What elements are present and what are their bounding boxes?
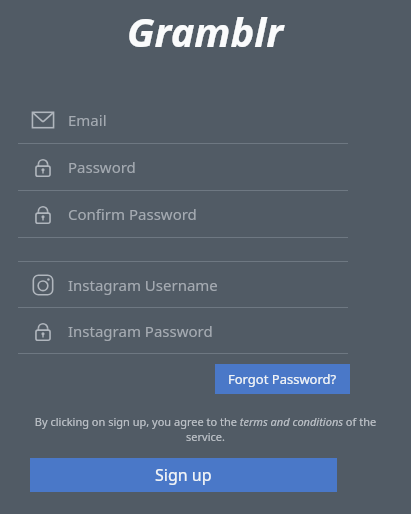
button[interactable]: Confirm Password xyxy=(18,191,348,237)
button[interactable]: Instagram Username xyxy=(18,262,348,307)
button[interactable]: Email xyxy=(18,96,348,143)
other: Instagram Password xyxy=(18,320,68,342)
staticText: Confirm Password xyxy=(68,204,197,224)
button[interactable]: Password xyxy=(18,144,348,190)
other: Confirm Password xyxy=(18,203,68,225)
staticText: Password xyxy=(68,157,136,177)
other: Password xyxy=(18,156,68,178)
button[interactable]: Instagram Password xyxy=(18,308,348,353)
staticText: Instagram Username xyxy=(68,275,218,295)
staticText: Forgot Password? xyxy=(228,370,337,388)
staticText: Email xyxy=(68,110,107,130)
staticText: By clicking on sign up, you agree to the… xyxy=(20,414,391,444)
staticText: Sign up xyxy=(155,464,212,486)
other: Email xyxy=(18,109,68,131)
staticText: Instagram Password xyxy=(68,321,213,341)
button[interactable]: Sign up xyxy=(30,458,337,492)
other: Instagram Username xyxy=(18,274,68,296)
staticText: Gramblr xyxy=(127,4,284,58)
button[interactable]: Forgot Password? xyxy=(215,364,350,394)
